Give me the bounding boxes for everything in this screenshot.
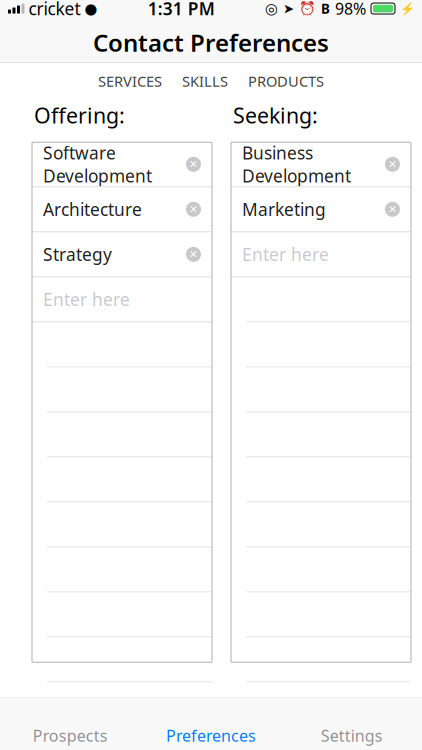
button[interactable]: Prospects xyxy=(0,697,141,750)
staticText: SERVICES xyxy=(98,71,162,91)
staticText: cricket xyxy=(28,0,80,20)
staticText: Preferences xyxy=(166,725,256,746)
staticText: ✕ xyxy=(388,158,397,170)
staticText: ✕ xyxy=(189,158,198,170)
staticText: B xyxy=(321,0,330,17)
button[interactable]: SKILLS xyxy=(172,63,238,99)
button[interactable]: Remove Business Development xyxy=(379,157,400,172)
staticText: ⏰ xyxy=(299,1,316,16)
button[interactable]: PRODUCTS xyxy=(238,63,334,99)
staticText: 1:31 PM xyxy=(148,0,215,20)
staticText: Architecture xyxy=(43,198,142,221)
button[interactable]: Remove Architecture xyxy=(180,202,201,217)
staticText: Seeking: xyxy=(233,101,318,129)
staticText: ● xyxy=(84,0,97,17)
staticText: Software Development xyxy=(43,141,152,187)
staticText: Offering: xyxy=(34,101,125,129)
staticText: Business Development xyxy=(242,141,351,187)
staticText: SKILLS xyxy=(182,71,228,91)
staticText: Enter here xyxy=(43,288,130,311)
staticText: ◎ xyxy=(265,0,278,17)
staticText: ✕ xyxy=(189,203,198,215)
staticText: Strategy xyxy=(43,243,112,266)
button[interactable]: SERVICES xyxy=(88,63,172,99)
staticText: ✕ xyxy=(189,248,198,260)
button[interactable]: Settings xyxy=(281,697,422,750)
staticText: Prospects xyxy=(33,725,108,746)
staticText: Contact Preferences xyxy=(93,27,329,58)
button[interactable]: Remove Software Development xyxy=(180,157,201,172)
button[interactable]: Remove Strategy xyxy=(180,247,201,262)
staticText: Marketing xyxy=(242,198,326,221)
staticText: ⚡ xyxy=(400,2,415,15)
staticText: Enter here xyxy=(242,243,329,266)
staticText: 98% xyxy=(335,0,366,19)
button[interactable]: Remove Marketing xyxy=(379,202,400,217)
button[interactable]: Preferences xyxy=(141,697,281,750)
staticText: ➤ xyxy=(283,1,294,16)
staticText: PRODUCTS xyxy=(248,71,324,91)
staticText: Settings xyxy=(321,725,383,746)
staticText: ✕ xyxy=(388,203,397,215)
